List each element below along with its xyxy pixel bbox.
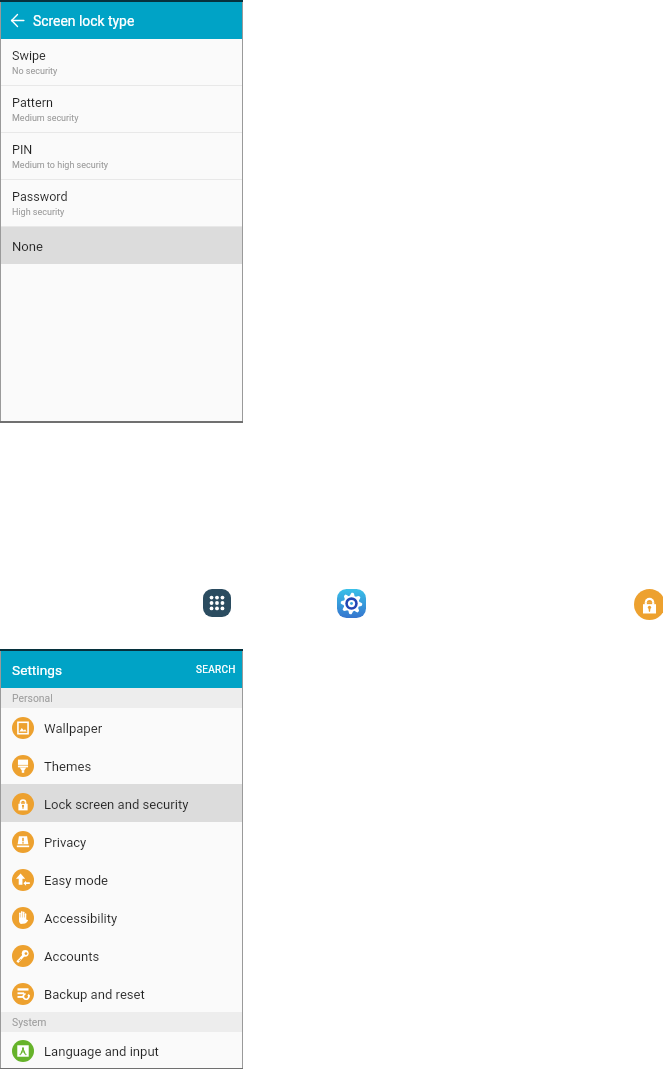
staticText: Accounts <box>44 949 100 964</box>
button[interactable]: Lock screen and security <box>634 589 663 620</box>
button[interactable]: Apps <box>203 589 231 617</box>
button[interactable]: PIN <box>1 133 242 180</box>
staticText: Accessibility <box>44 911 118 926</box>
staticText: Privacy <box>44 835 87 850</box>
staticText: Password <box>12 189 68 204</box>
staticText: Themes <box>44 759 92 774</box>
staticText: System <box>12 1016 47 1028</box>
button[interactable]: Password <box>1 180 242 227</box>
button[interactable]: Navigate up <box>1 2 33 39</box>
button[interactable]: None <box>1 227 242 264</box>
staticText: Personal <box>12 692 53 704</box>
staticText: Swipe <box>12 48 46 63</box>
staticText: Medium to high security <box>12 160 109 171</box>
button[interactable]: Lock screen and security <box>1 784 242 822</box>
staticText: High security <box>12 207 65 218</box>
button[interactable]: Privacy <box>1 822 242 860</box>
staticText: Wallpaper <box>44 721 103 736</box>
button[interactable]: Backup and reset <box>1 974 242 1012</box>
staticText: None <box>12 239 43 254</box>
button[interactable]: Easy mode <box>1 860 242 898</box>
button[interactable]: Wallpaper <box>1 708 242 746</box>
button[interactable]: Accessibility <box>1 898 242 936</box>
button[interactable]: Settings <box>337 589 366 618</box>
button[interactable]: Swipe <box>1 39 242 86</box>
staticText: Screen lock type <box>33 13 135 29</box>
staticText: Medium security <box>12 113 79 124</box>
button[interactable]: Accounts <box>1 936 242 974</box>
staticText: No security <box>12 66 58 77</box>
staticText: Lock screen and security <box>44 797 189 812</box>
staticText: Easy mode <box>44 873 109 888</box>
staticText: Backup and reset <box>44 987 145 1002</box>
button[interactable]: Themes <box>1 746 242 784</box>
button[interactable]: SEARCH <box>192 651 240 688</box>
staticText: SEARCH <box>196 664 236 676</box>
button[interactable]: Pattern <box>1 86 242 133</box>
staticText: Pattern <box>12 95 53 110</box>
button[interactable]: Language and input <box>1 1032 242 1068</box>
staticText: PIN <box>12 142 33 157</box>
staticText: Language and input <box>44 1044 159 1059</box>
staticText: Settings <box>12 662 62 678</box>
